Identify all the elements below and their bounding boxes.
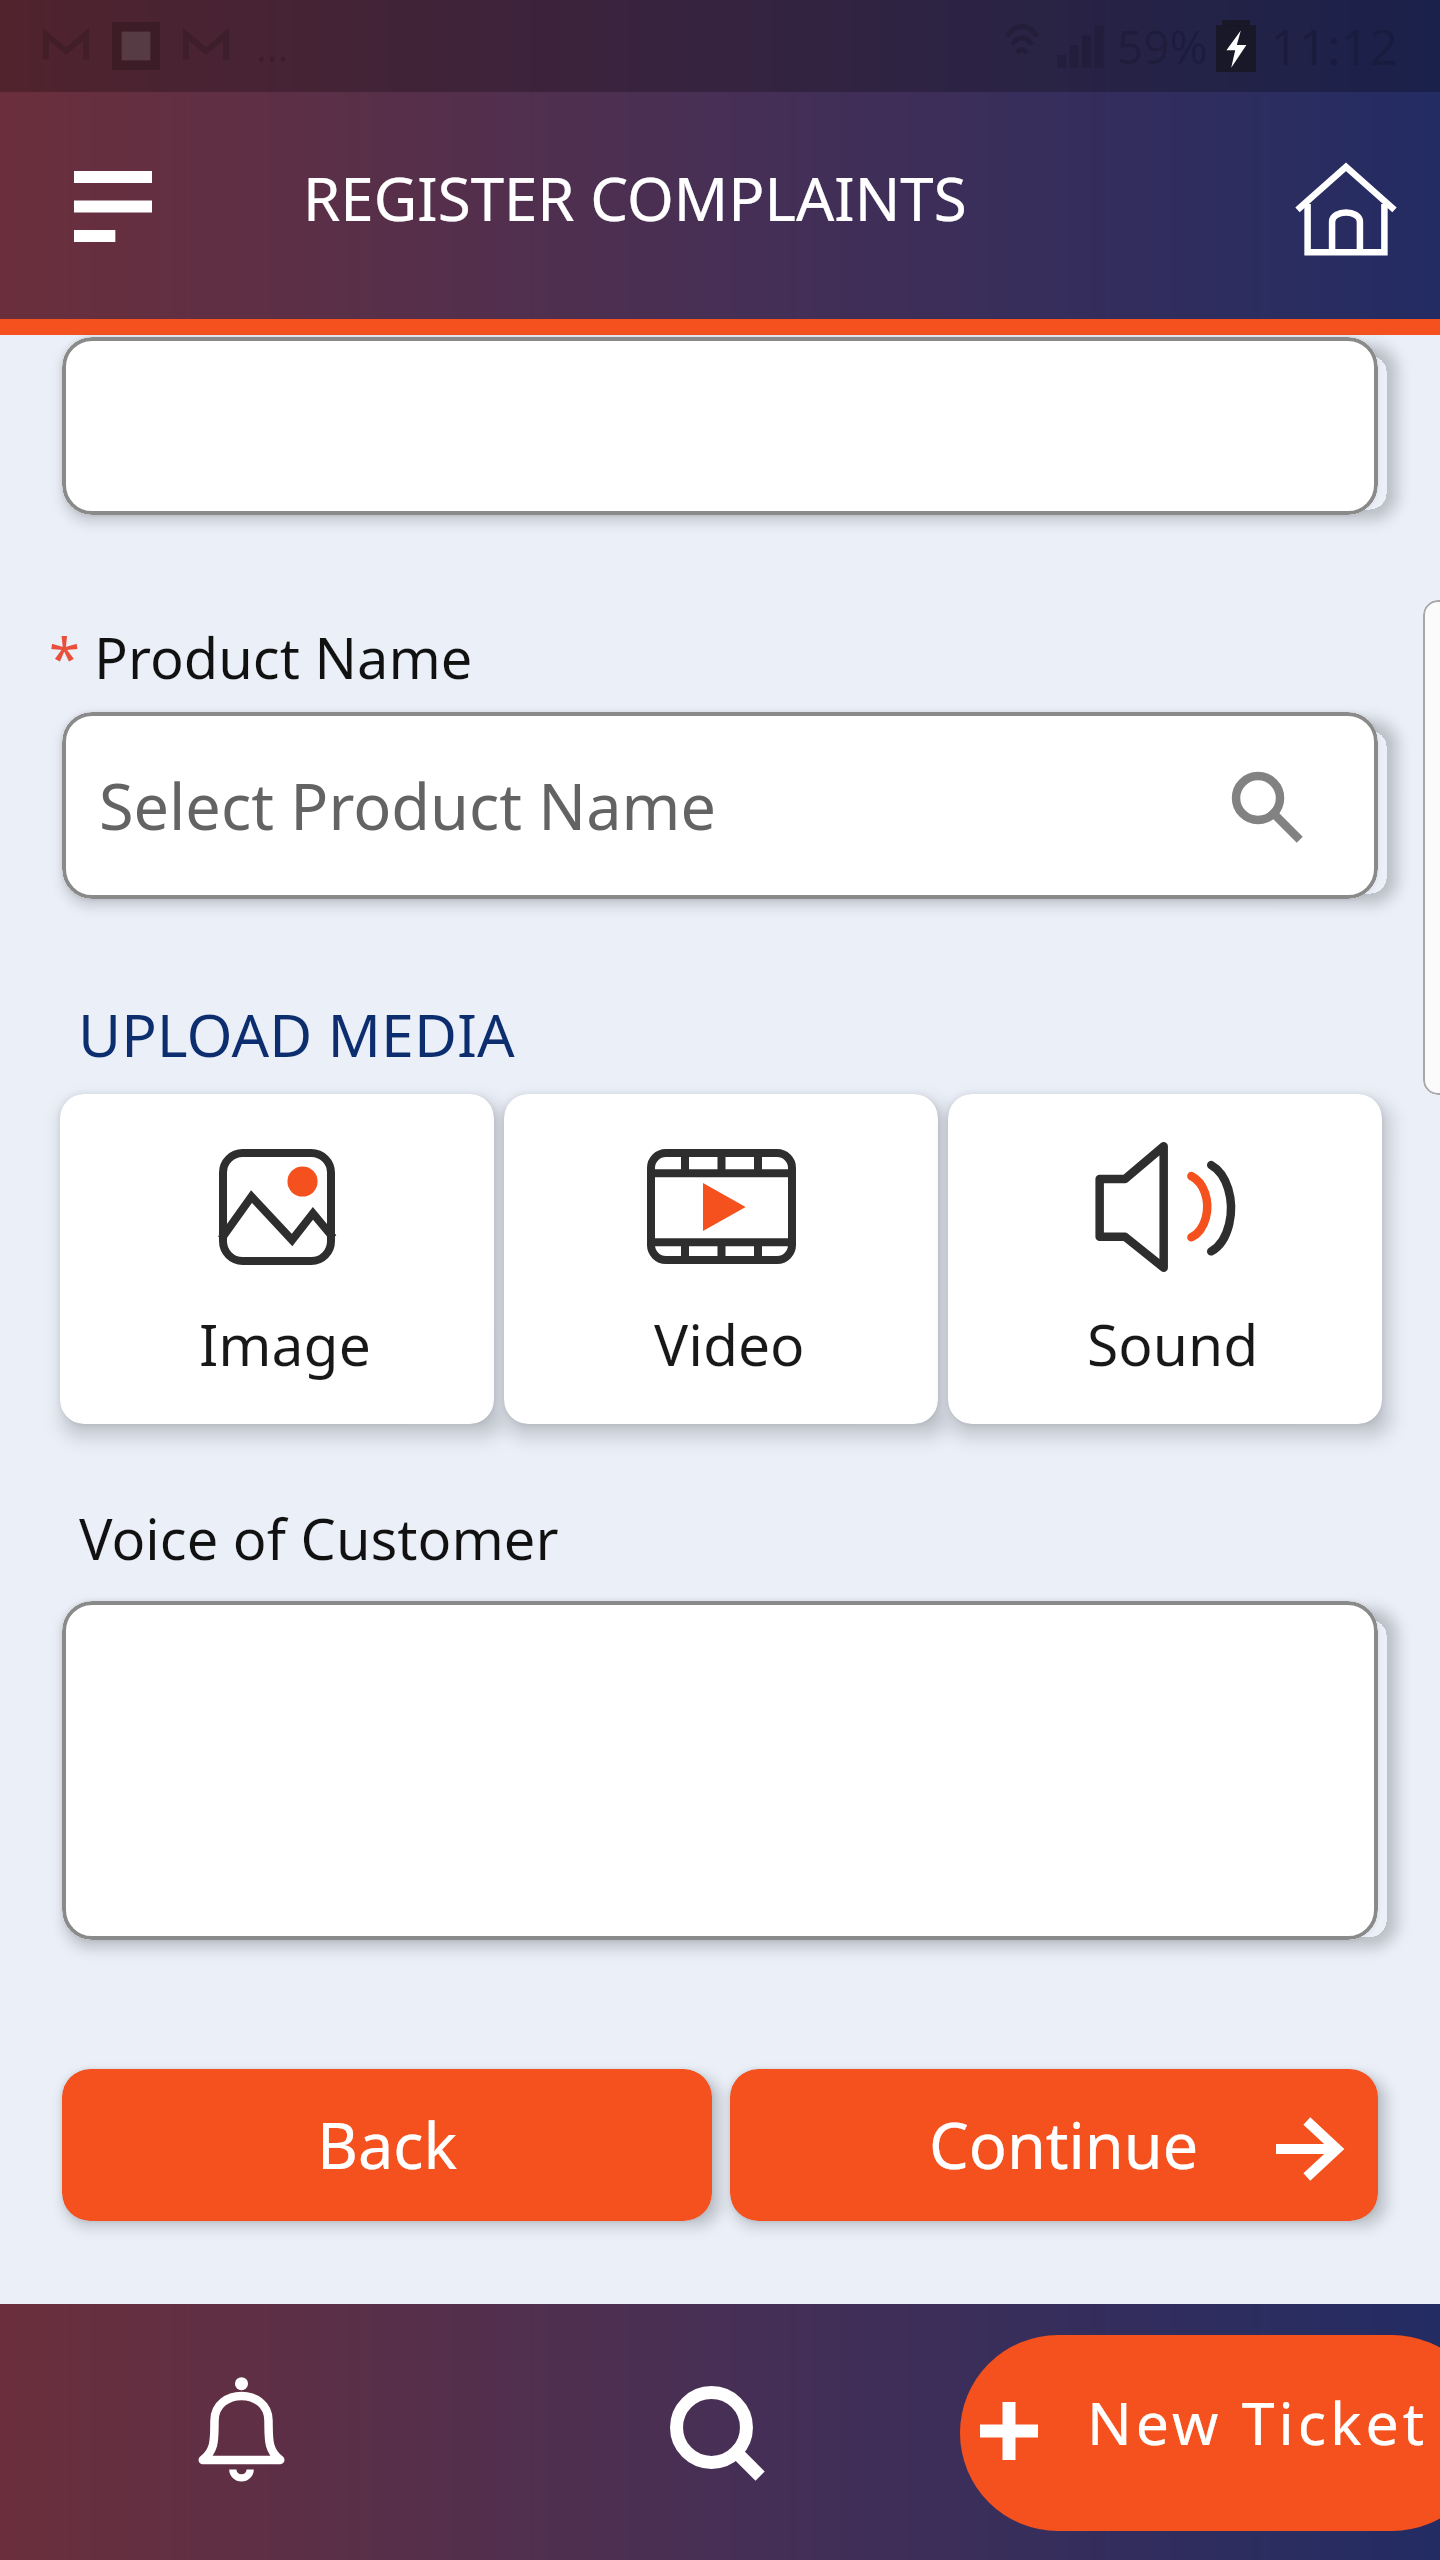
button[interactable]: Back bbox=[62, 2069, 712, 2221]
button[interactable]: Home bbox=[1291, 154, 1401, 264]
staticText: Product Name bbox=[94, 619, 473, 695]
staticText: Video bbox=[654, 1305, 805, 1383]
staticText: Voice of Customer bbox=[79, 1500, 559, 1576]
staticText: Back bbox=[317, 2102, 458, 2188]
staticText: Continue bbox=[929, 2102, 1199, 2188]
staticText: REGISTER COMPLAINTS bbox=[303, 157, 967, 239]
staticText: UPLOAD MEDIA bbox=[78, 994, 515, 1074]
staticText: 11:12 bbox=[1270, 12, 1398, 80]
staticText: 59% bbox=[1117, 15, 1208, 78]
staticText: Sound bbox=[1087, 1305, 1259, 1383]
button[interactable]: Notifications bbox=[175, 2366, 307, 2498]
staticText: Select Product Name bbox=[99, 763, 716, 849]
staticText: * bbox=[49, 619, 80, 695]
button[interactable] bbox=[62, 337, 1378, 515]
button[interactable] bbox=[62, 1601, 1378, 1940]
staticText: New Ticket bbox=[1087, 2382, 1429, 2462]
button[interactable]: Video bbox=[504, 1094, 938, 1424]
button[interactable]: Continue bbox=[730, 2069, 1378, 2221]
button[interactable]: Select Product Name bbox=[62, 712, 1378, 899]
button[interactable]: New Ticket bbox=[960, 2335, 1440, 2531]
button[interactable]: Sound bbox=[948, 1094, 1382, 1424]
button[interactable]: Menu bbox=[58, 151, 168, 261]
button[interactable]: Search bbox=[650, 2366, 782, 2498]
staticText: Image bbox=[199, 1305, 371, 1383]
button[interactable]: Image bbox=[60, 1094, 494, 1424]
